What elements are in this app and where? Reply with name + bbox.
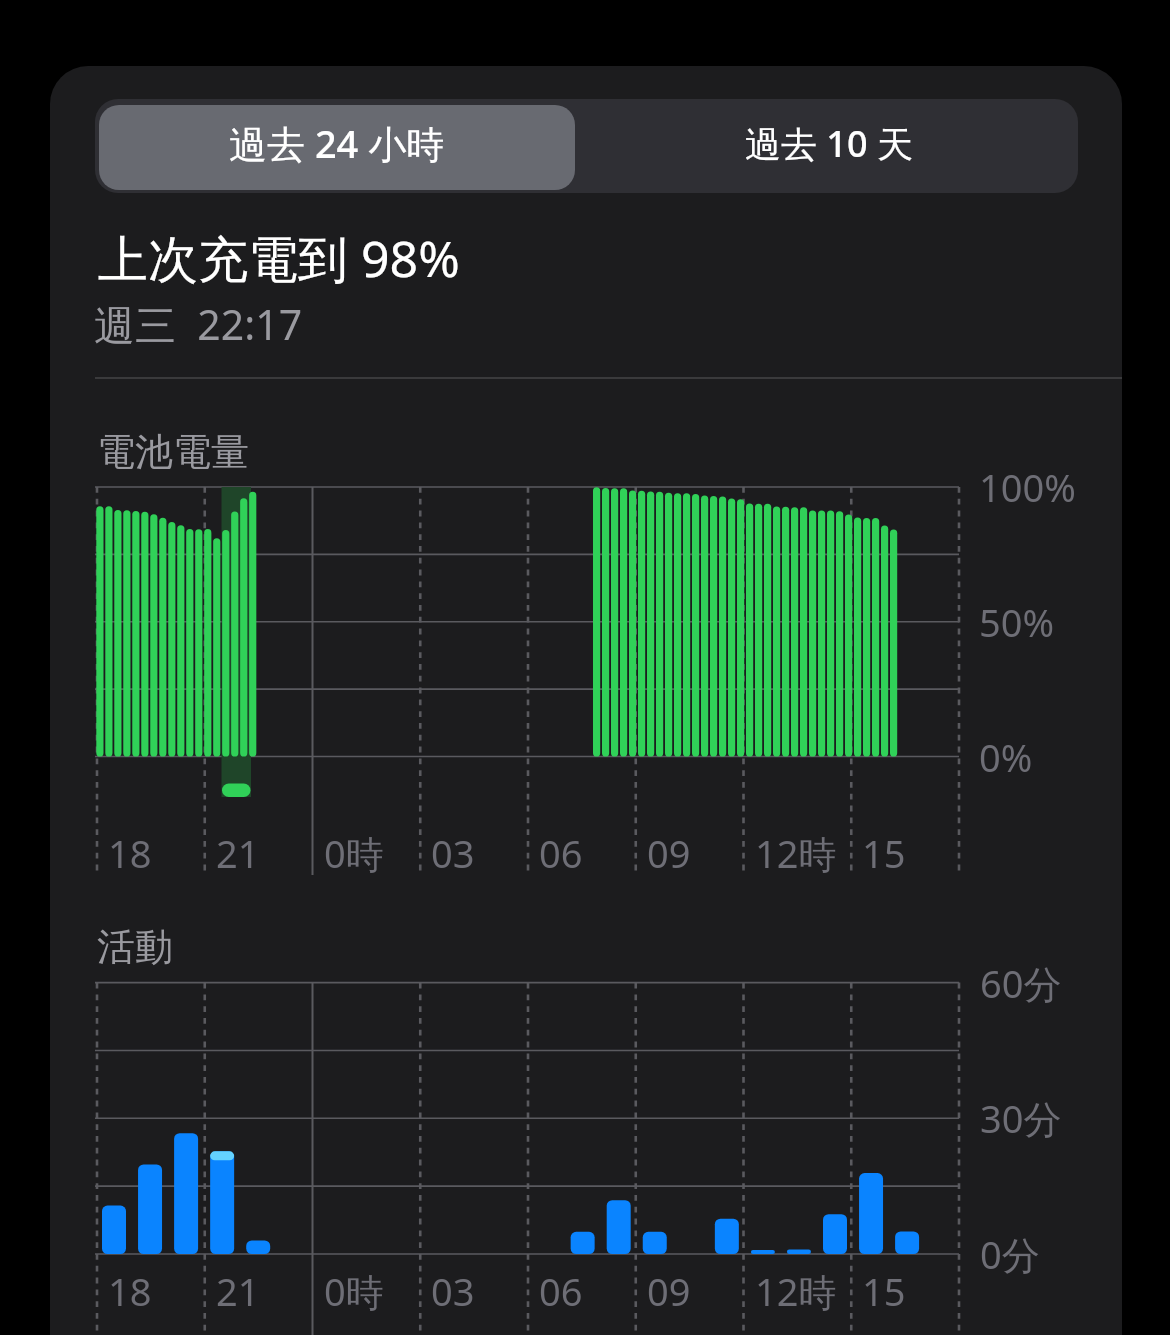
staticText: 60分	[980, 957, 1062, 1009]
staticText: 30分	[980, 1092, 1062, 1144]
staticText: 0時	[324, 827, 384, 879]
staticText: 0時	[324, 1265, 384, 1317]
button[interactable]: 過去 10 天	[579, 105, 1078, 190]
staticText: 電池電量	[97, 428, 249, 476]
staticText: 12時	[755, 827, 837, 879]
staticText: 09	[647, 827, 691, 879]
staticText: 18	[108, 1265, 152, 1317]
staticText: 過去 10 天	[745, 119, 913, 168]
staticText: 12時	[755, 1265, 837, 1317]
staticText: 21	[216, 827, 260, 879]
staticText: 03	[431, 827, 475, 879]
staticText: 100%	[979, 461, 1076, 513]
button[interactable]: 過去 24 小時	[99, 105, 575, 190]
button[interactable]: 活動圖表	[95, 969, 959, 1268]
staticText: 0%	[979, 731, 1033, 783]
staticText: 上次充電到 98%	[98, 224, 460, 292]
staticText: 06	[539, 827, 583, 879]
staticText: 09	[647, 1265, 691, 1317]
staticText: 18	[108, 827, 152, 879]
staticText: 週三 22:17	[94, 296, 303, 352]
staticText: 活動	[97, 923, 173, 971]
staticText: 06	[539, 1265, 583, 1317]
staticText: 50%	[979, 596, 1055, 648]
staticText: 15	[862, 1265, 906, 1317]
staticText: 過去 24 小時	[229, 117, 445, 169]
staticText: 03	[431, 1265, 475, 1317]
staticText: 0分	[980, 1228, 1040, 1280]
staticText: 15	[862, 827, 906, 879]
button[interactable]: 電池電量圖表	[95, 473, 959, 799]
staticText: 21	[216, 1265, 260, 1317]
